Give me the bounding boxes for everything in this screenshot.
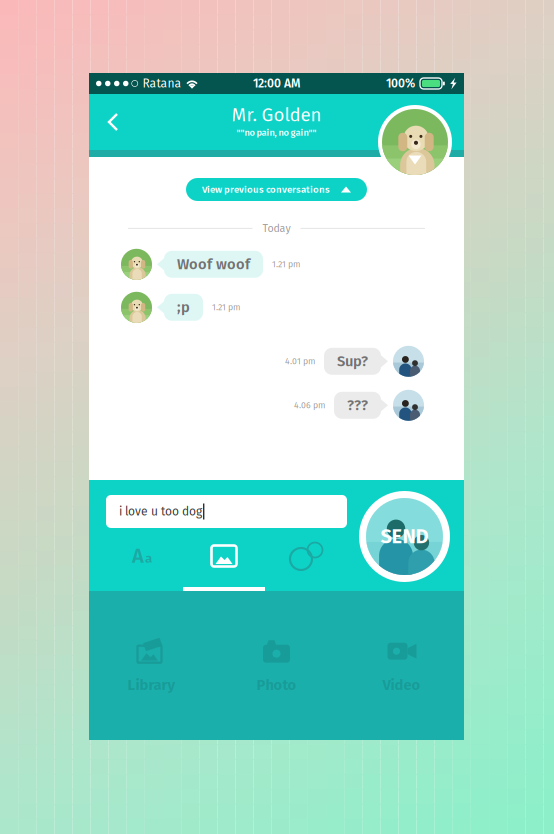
staticText: Mr. Golden (231, 104, 321, 126)
staticText: View previous conversations (202, 184, 330, 195)
button[interactable]: 4.06 pm (89, 390, 464, 421)
button[interactable]: Photos (183, 534, 265, 578)
button[interactable]: Back (89, 94, 137, 150)
staticText: Video (382, 676, 420, 694)
staticText: 12:00 AM (253, 76, 300, 91)
staticText: i love u too dog (119, 504, 202, 519)
button[interactable]: Stickers (265, 534, 347, 578)
staticText: Photo (256, 676, 296, 694)
staticText: a (145, 550, 152, 566)
button[interactable]: i love u too dog (106, 495, 347, 528)
staticText: 1.21 pm (272, 259, 300, 269)
staticText: ""no pain, no gain"" (236, 127, 316, 138)
staticText: ;p (177, 298, 190, 316)
staticText: 4.06 pm (294, 400, 325, 410)
staticText: 1.21 pm (212, 302, 240, 312)
button[interactable]: Video (339, 591, 464, 740)
staticText: Ratana (142, 76, 181, 91)
button[interactable]: 4.01 pm (89, 346, 464, 377)
button[interactable]: View previous conversations (186, 178, 367, 201)
staticText: SEND (380, 524, 428, 548)
staticText: A (132, 544, 144, 568)
button[interactable]: Photo (214, 591, 339, 740)
button[interactable]: Library (89, 591, 214, 740)
button[interactable]: Woof woof (89, 249, 464, 280)
staticText: Woof woof (177, 255, 250, 273)
staticText: ??? (347, 396, 368, 414)
button[interactable]: SEND (359, 491, 450, 582)
staticText: Library (127, 676, 175, 694)
staticText: 4.01 pm (285, 356, 315, 366)
staticText: 100% (386, 76, 415, 91)
button[interactable]: ;p (89, 292, 464, 323)
staticText: Today (262, 222, 290, 235)
button[interactable]: Contact info (378, 105, 452, 179)
staticText: Sup? (337, 352, 368, 370)
button[interactable]: Text (101, 534, 183, 578)
